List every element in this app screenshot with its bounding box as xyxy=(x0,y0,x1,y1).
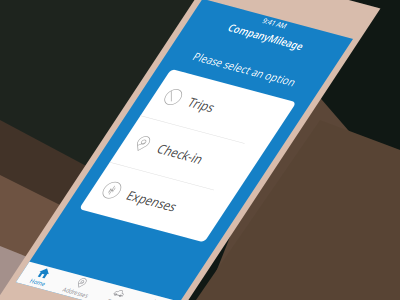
staticText: Trips xyxy=(118,200,181,238)
staticText: CompanyMileage xyxy=(99,28,288,58)
staticText: Please select an option xyxy=(63,106,323,138)
button[interactable]: Trips xyxy=(32,163,354,275)
staticText: 9:41 AM xyxy=(163,0,223,21)
button[interactable]: Check-in xyxy=(32,276,354,300)
